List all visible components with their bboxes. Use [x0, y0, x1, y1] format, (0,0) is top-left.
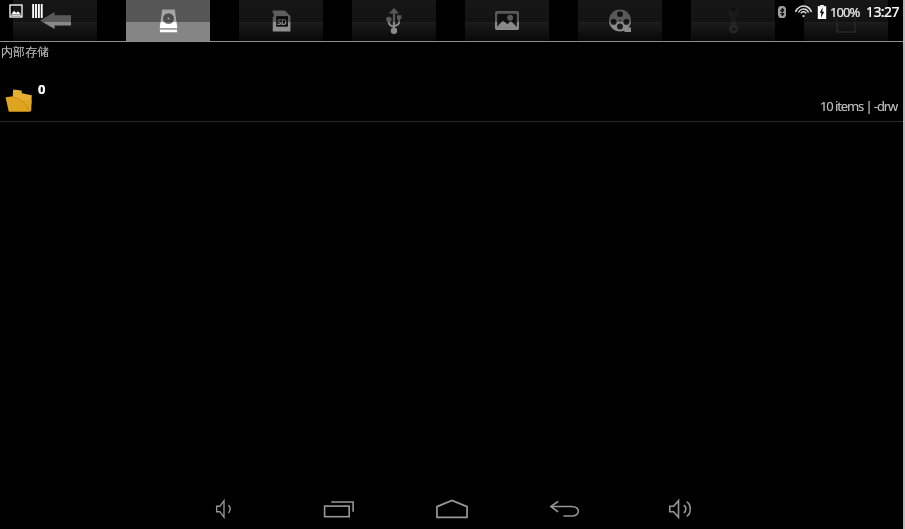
button[interactable]: 0: [0, 80, 905, 121]
button[interactable]: Recents: [313, 480, 365, 529]
button[interactable]: Volume up: [652, 480, 704, 529]
button[interactable]: Back: [539, 480, 591, 529]
staticText: 13:27: [866, 2, 899, 21]
staticText: SD: [277, 16, 287, 27]
button[interactable]: Pictures: [465, 0, 549, 41]
button[interactable]: USB storage: [352, 0, 436, 41]
button[interactable]: Apps: [804, 0, 888, 41]
button[interactable]: Tools: [691, 0, 775, 41]
staticText: 0: [38, 80, 46, 98]
button[interactable]: Back: [13, 0, 97, 41]
staticText: 10 items | -drw: [820, 97, 898, 115]
button[interactable]: Home: [426, 480, 478, 529]
button[interactable]: Internal storage: [126, 0, 210, 41]
button[interactable]: 内部存储: [0, 42, 905, 80]
staticText: 100%: [830, 3, 860, 21]
button[interactable]: Videos: [578, 0, 662, 41]
button[interactable]: Volume down: [198, 480, 250, 529]
button[interactable]: SD card: [239, 0, 323, 41]
staticText: 内部存储: [1, 44, 49, 59]
